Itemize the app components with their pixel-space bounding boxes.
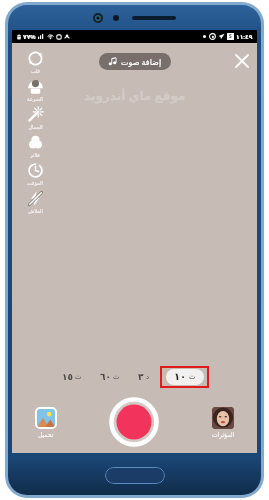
button[interactable]: Close bbox=[231, 50, 253, 72]
staticText: ث bbox=[113, 373, 120, 381]
staticText: ث bbox=[75, 373, 82, 381]
staticText: ث bbox=[189, 373, 196, 381]
staticText: الجمال bbox=[28, 124, 43, 130]
staticText: موقع ماي أندرويد bbox=[84, 87, 186, 103]
button[interactable]: Speed bbox=[18, 75, 52, 103]
button[interactable]: ٣ bbox=[136, 370, 152, 384]
staticText: S bbox=[229, 33, 232, 40]
button[interactable]: Upload bbox=[24, 407, 68, 438]
staticText: ١١:٤٩ bbox=[236, 33, 253, 41]
staticText: د bbox=[146, 373, 150, 381]
staticText: ٦٠ bbox=[100, 372, 111, 382]
button[interactable]: Flip camera bbox=[18, 47, 52, 75]
staticText: الفلاش bbox=[28, 208, 43, 214]
button[interactable]: ١٥ bbox=[60, 370, 84, 384]
button[interactable]: إضافة صوت bbox=[99, 53, 171, 70]
button[interactable]: Home bbox=[105, 467, 165, 484]
staticText: ١٥ bbox=[62, 372, 73, 382]
staticText: قلب bbox=[31, 68, 40, 74]
button[interactable]: Flash bbox=[18, 187, 52, 215]
staticText: المؤقت bbox=[27, 180, 43, 186]
staticText: ٧٧% bbox=[23, 33, 36, 41]
staticText: تحميل bbox=[38, 431, 54, 438]
staticText: ١٠ bbox=[174, 371, 187, 383]
staticText: السرعة bbox=[27, 96, 43, 102]
button[interactable]: Record bbox=[109, 397, 159, 447]
staticText: إضافة صوت bbox=[121, 56, 162, 67]
staticText: ٣ bbox=[138, 372, 144, 382]
button[interactable]: Timer bbox=[18, 159, 52, 187]
button[interactable]: ٦٠ bbox=[98, 370, 122, 384]
staticText: المؤثرات bbox=[212, 431, 235, 438]
button[interactable]: Effects bbox=[201, 407, 245, 438]
button[interactable]: Filters bbox=[18, 131, 52, 159]
button[interactable]: ١٠ bbox=[166, 369, 204, 385]
staticText: فلاتر bbox=[30, 152, 40, 158]
button[interactable]: Beauty bbox=[18, 103, 52, 131]
